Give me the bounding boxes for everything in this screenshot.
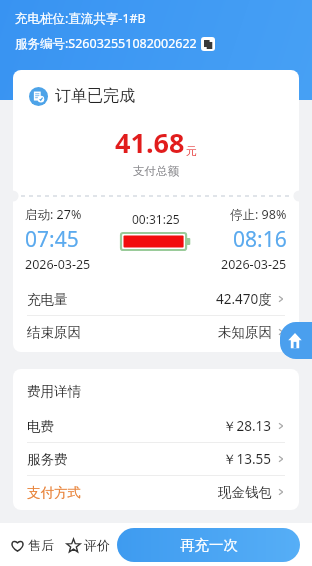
staticText: 2026-03-25 xyxy=(221,256,287,273)
button[interactable]: 充电量 xyxy=(13,283,299,315)
staticText: 订单已完成 xyxy=(55,86,135,106)
staticText: 42.470度 xyxy=(216,290,272,308)
staticText: 07:45 xyxy=(25,225,79,254)
staticText: 元 xyxy=(186,144,197,158)
staticText: 支付方式 xyxy=(27,484,81,501)
staticText: ￥28.13 xyxy=(223,417,272,435)
staticText: 未知原因 xyxy=(218,324,272,341)
staticText: 电费 xyxy=(27,418,54,435)
button[interactable]: 首页 xyxy=(280,322,312,359)
button[interactable]: 支付方式 xyxy=(13,476,299,508)
button[interactable]: 复制服务编号 xyxy=(201,37,215,51)
staticText: 启动: 27% xyxy=(25,206,82,223)
staticText: 服务费 xyxy=(27,451,68,468)
staticText: 费用详情 xyxy=(27,383,81,400)
button[interactable]: 售后 xyxy=(8,533,56,557)
staticText: 08:16 xyxy=(233,225,287,254)
button[interactable]: 服务费 xyxy=(13,443,299,475)
staticText: 再充一次 xyxy=(180,536,238,554)
staticText: 充电桩位:直流共享-1#B xyxy=(15,10,146,27)
staticText: 2026-03-25 xyxy=(25,256,91,273)
staticText: 支付总额 xyxy=(13,164,299,178)
staticText: 售后 xyxy=(28,537,54,553)
staticText: 现金钱包 xyxy=(218,484,272,501)
staticText: 41.68 xyxy=(115,124,185,161)
staticText: 00:31:25 xyxy=(132,211,180,227)
button[interactable]: 评价 xyxy=(64,533,112,557)
staticText: 评价 xyxy=(84,537,110,553)
staticText: 充电量 xyxy=(27,291,68,308)
staticText: 服务编号:S26032551082002622 xyxy=(15,35,197,52)
staticText: 结束原因 xyxy=(27,324,81,341)
button[interactable]: 电费 xyxy=(13,410,299,442)
button[interactable]: 再充一次 xyxy=(117,528,300,562)
staticText: ￥13.55 xyxy=(223,450,272,468)
staticText: 停止: 98% xyxy=(230,206,287,223)
button[interactable]: 结束原因 xyxy=(13,316,299,348)
